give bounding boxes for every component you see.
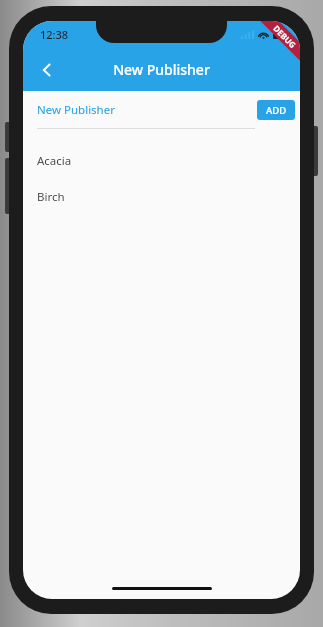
button[interactable]: New Publisher bbox=[37, 91, 257, 128]
staticText: New Publisher bbox=[113, 60, 210, 79]
staticText: New Publisher bbox=[37, 102, 115, 118]
staticText: Acacia bbox=[37, 153, 72, 169]
button[interactable]: Birch bbox=[23, 179, 300, 215]
button[interactable]: Back bbox=[28, 51, 66, 89]
button[interactable]: ADD bbox=[257, 100, 295, 120]
staticText: Birch bbox=[37, 189, 65, 205]
button[interactable]: Acacia bbox=[23, 143, 300, 179]
staticText: ADD bbox=[266, 104, 287, 117]
staticText: 12:38 bbox=[40, 27, 69, 42]
staticText: DEBUG bbox=[271, 23, 299, 50]
